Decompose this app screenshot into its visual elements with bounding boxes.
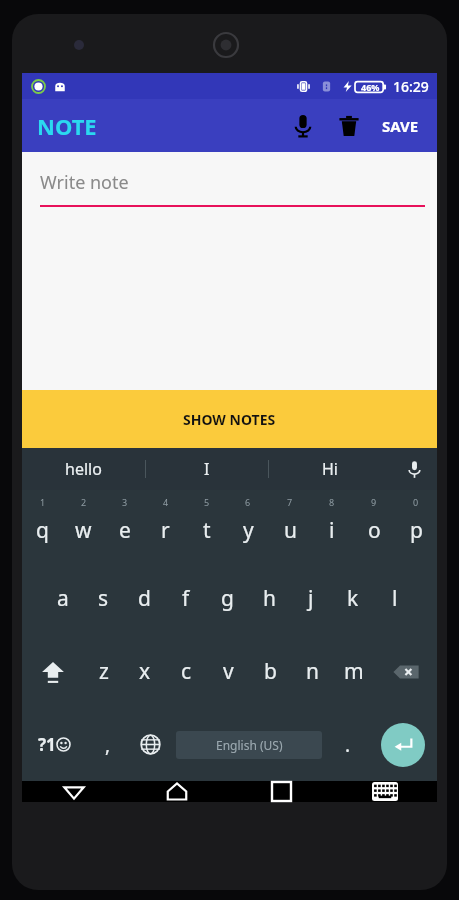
staticText: k [347,584,359,613]
button[interactable]: Backspace [375,635,437,708]
button[interactable]: English (US) [176,731,322,759]
staticText: z [99,657,109,686]
staticText: 2 [81,496,87,508]
button[interactable]: . [326,708,369,781]
button[interactable]: 8 [311,490,353,562]
staticText: 46% [361,81,380,93]
staticText: v [223,657,234,686]
button[interactable]: k [332,562,374,635]
staticText: 1 [40,496,46,508]
staticText: 9 [371,496,377,508]
button[interactable]: 2 [63,490,104,562]
staticText: i [329,516,335,545]
staticText: j [308,584,314,613]
staticText: 7 [287,496,293,508]
button[interactable]: g [206,562,248,635]
button[interactable]: v [207,635,249,708]
button[interactable]: hello [22,448,145,490]
button[interactable]: Recent apps [229,781,333,802]
staticText: SAVE [382,116,419,136]
staticText: hello [65,458,102,480]
staticText: a [57,584,69,613]
button[interactable]: 3 [104,490,145,562]
button[interactable]: x [124,635,165,708]
button[interactable]: Voice typing [391,448,437,490]
staticText: w [75,516,92,545]
button[interactable]: Hide keyboard [333,781,437,802]
staticText: u [284,516,297,545]
staticText: 0 [413,496,419,508]
button[interactable]: 4 [145,490,186,562]
staticText: n [306,657,319,686]
button[interactable]: Change language [129,708,172,781]
button[interactable]: SHOW NOTES [22,390,437,448]
staticText: t [203,516,211,545]
button[interactable]: ?1 [22,708,86,781]
staticText: b [264,657,277,686]
staticText: h [263,584,276,613]
button[interactable]: Enter [381,723,425,767]
staticText: g [221,584,234,613]
staticText: c [181,657,192,686]
staticText: 6 [245,496,251,508]
button[interactable]: m [333,635,375,708]
button[interactable]: n [291,635,333,708]
button[interactable]: z [83,635,124,708]
staticText: SHOW NOTES [183,410,276,429]
button[interactable]: a [42,562,83,635]
staticText: English (US) [216,737,283,753]
button[interactable]: d [124,562,165,635]
staticText: 16:29 [393,77,429,96]
staticText: s [98,584,109,613]
button[interactable]: 5 [186,490,227,562]
staticText: 8 [329,496,335,508]
button[interactable]: 0 [395,490,437,562]
staticText: Hi [322,458,338,480]
staticText: f [182,584,190,613]
staticText: 5 [204,496,210,508]
button[interactable]: Shift [22,635,83,708]
button[interactable]: l [374,562,416,635]
button[interactable]: b [249,635,291,708]
staticText: I [204,458,210,480]
button[interactable]: Hi [269,448,391,490]
staticText: Write note [40,170,129,195]
button[interactable]: SAVE [372,104,429,148]
button[interactable]: f [165,562,206,635]
button[interactable]: s [83,562,124,635]
button[interactable]: 7 [269,490,311,562]
button[interactable]: , [86,708,129,781]
button[interactable]: 9 [353,490,395,562]
staticText: ?1 [38,733,56,756]
staticText: x [139,657,151,686]
button[interactable]: 1 [22,490,63,562]
button[interactable]: j [290,562,332,635]
staticText: r [161,516,170,545]
staticText: 4 [163,496,169,508]
button[interactable]: h [248,562,290,635]
staticText: q [36,516,49,545]
staticText: p [410,516,423,545]
button[interactable]: 6 [227,490,269,562]
button[interactable]: c [165,635,207,708]
staticText: l [392,584,398,613]
button[interactable]: Voice input [280,103,326,149]
staticText: , [105,732,111,758]
button[interactable]: Back [22,781,125,802]
staticText: m [344,657,364,686]
staticText: NOTE [37,111,97,141]
button[interactable]: Delete [326,103,372,149]
button[interactable]: Home [125,781,229,802]
staticText: . [345,732,351,758]
staticText: d [138,584,151,613]
staticText: e [119,516,131,545]
staticText: 3 [122,496,128,508]
staticText: y [243,516,254,545]
staticText: o [368,516,381,545]
button[interactable]: I [146,448,268,490]
